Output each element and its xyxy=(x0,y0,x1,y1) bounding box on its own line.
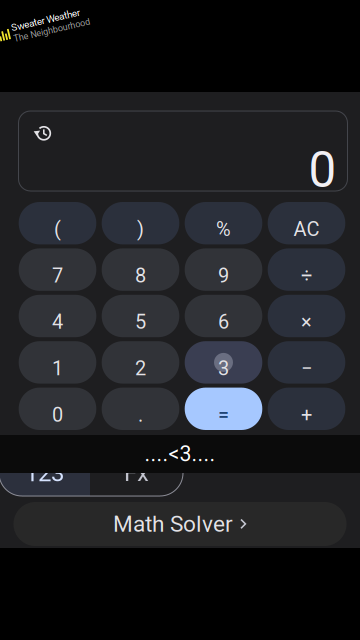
staticText: ....<3.... xyxy=(144,441,215,466)
button[interactable]: ) xyxy=(102,202,179,244)
button[interactable]: % xyxy=(185,202,262,244)
staticText: 2 xyxy=(135,357,146,380)
staticText: 0 xyxy=(52,403,63,426)
button[interactable]: + xyxy=(268,388,345,430)
button[interactable]: 3 xyxy=(185,341,262,384)
staticText: − xyxy=(301,357,312,380)
button[interactable]: AC xyxy=(268,202,345,244)
button[interactable]: 0 xyxy=(19,388,96,430)
button[interactable]: . xyxy=(102,388,179,430)
staticText: 0 xyxy=(308,141,336,199)
staticText: 9 xyxy=(218,264,229,287)
staticText: × xyxy=(301,310,312,334)
button[interactable]: ( xyxy=(19,202,96,244)
button[interactable]: Math Solver xyxy=(13,502,346,546)
staticText: 6 xyxy=(218,310,229,334)
staticText: 123 xyxy=(25,459,64,487)
button[interactable]: Fx xyxy=(90,450,183,496)
staticText: ( xyxy=(54,217,61,241)
button[interactable]: 7 xyxy=(19,248,96,291)
staticText: ÷ xyxy=(301,264,312,287)
staticText: Sweater Weather xyxy=(12,15,82,26)
staticText: 3 xyxy=(218,357,229,380)
button[interactable]: 8 xyxy=(102,248,179,291)
button[interactable]: 5 xyxy=(102,295,179,337)
button[interactable]: 1 xyxy=(19,341,96,384)
staticText: The Neighbourhood xyxy=(12,27,90,37)
button[interactable]: History xyxy=(33,125,50,141)
staticText: Fx xyxy=(124,459,149,487)
staticText: ) xyxy=(137,217,144,241)
staticText: 4 xyxy=(52,310,63,334)
button[interactable]: = xyxy=(185,388,262,430)
button[interactable]: 6 xyxy=(185,295,262,337)
staticText: 7 xyxy=(52,264,63,287)
button[interactable]: 123 xyxy=(0,450,90,496)
staticText: 1 xyxy=(52,357,63,380)
staticText: = xyxy=(218,403,229,426)
button[interactable]: 2 xyxy=(102,341,179,384)
button[interactable]: − xyxy=(268,341,345,384)
button[interactable]: 9 xyxy=(185,248,262,291)
staticText: AC xyxy=(293,217,319,241)
button[interactable]: ÷ xyxy=(268,248,345,291)
staticText: 8 xyxy=(135,264,146,287)
button[interactable]: 4 xyxy=(19,295,96,337)
staticText: . xyxy=(138,403,143,426)
staticText: + xyxy=(301,403,312,426)
button[interactable]: × xyxy=(268,295,345,337)
staticText: Math Solver xyxy=(113,511,233,537)
staticText: 5 xyxy=(135,310,146,334)
staticText: % xyxy=(216,217,231,241)
